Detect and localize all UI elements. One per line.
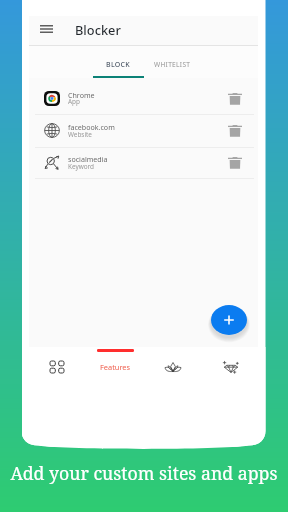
button[interactable]: Features bbox=[86, 352, 144, 382]
button[interactable]: Add bbox=[211, 305, 247, 335]
button[interactable]: Delete bbox=[224, 88, 246, 110]
button[interactable]: Relax bbox=[144, 352, 202, 382]
button[interactable] bbox=[93, 52, 145, 78]
button[interactable]: Premium bbox=[202, 352, 260, 382]
staticText: Features bbox=[100, 362, 130, 372]
staticText: BLOCK bbox=[106, 60, 131, 70]
staticText: Blocker bbox=[75, 21, 121, 38]
staticText: socialmedia bbox=[68, 154, 108, 164]
staticText: Keyword bbox=[68, 162, 95, 171]
button[interactable]: Delete bbox=[224, 152, 246, 174]
button[interactable]: Menu bbox=[34, 17, 58, 41]
button[interactable] bbox=[147, 52, 195, 78]
button[interactable] bbox=[29, 114, 258, 147]
staticText: Website bbox=[68, 130, 92, 139]
staticText: WHITELIST bbox=[154, 60, 191, 69]
button[interactable]: Apps bbox=[28, 352, 86, 382]
staticText: Add your custom sites and apps bbox=[0, 461, 288, 485]
button[interactable] bbox=[29, 82, 258, 114]
button[interactable]: Delete bbox=[224, 120, 246, 142]
button[interactable] bbox=[29, 147, 258, 179]
staticText: Chrome bbox=[68, 90, 95, 100]
staticText: facebook.com bbox=[68, 122, 115, 132]
staticText: App bbox=[68, 97, 80, 106]
